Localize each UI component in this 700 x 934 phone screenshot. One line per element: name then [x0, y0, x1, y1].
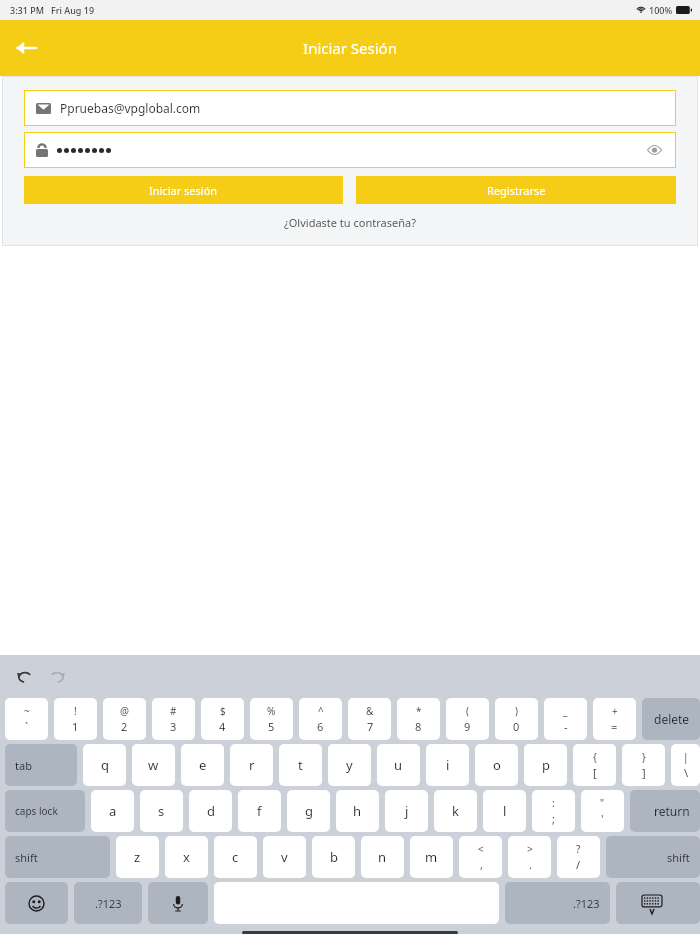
staticText: u	[394, 756, 403, 774]
staticText: 6	[317, 719, 324, 734]
button[interactable]: }	[622, 744, 665, 786]
button[interactable]: #	[152, 698, 195, 740]
button[interactable]: Undo	[10, 662, 40, 692]
button[interactable]: p	[524, 744, 567, 786]
button[interactable]: h	[336, 790, 379, 832]
button[interactable]: .?123	[74, 882, 142, 924]
button[interactable]: ¿Olvidaste tu contraseña?	[278, 213, 422, 232]
button[interactable]: %	[250, 698, 293, 740]
button[interactable]: {	[573, 744, 616, 786]
button[interactable]: delete	[642, 698, 700, 740]
staticText: ;	[552, 811, 555, 826]
button[interactable]: z	[116, 836, 159, 878]
button[interactable]: Redo	[42, 662, 72, 692]
staticText: 2	[121, 719, 128, 734]
staticText: shift	[15, 850, 38, 865]
button[interactable]: caps lock	[5, 790, 85, 832]
staticText: 0	[513, 719, 520, 734]
button[interactable]: tab	[5, 744, 77, 786]
staticText: )	[515, 704, 518, 718]
button[interactable]: l	[483, 790, 526, 832]
staticText: j	[405, 802, 409, 820]
button[interactable]: ~	[5, 698, 48, 740]
staticText: {	[593, 750, 597, 764]
button[interactable]: ^	[299, 698, 342, 740]
button[interactable]: a	[91, 790, 134, 832]
button[interactable]: :	[532, 790, 575, 832]
staticText: |	[683, 750, 689, 764]
button[interactable]: <	[459, 836, 502, 878]
button[interactable]: b	[312, 836, 355, 878]
button[interactable]: o	[475, 744, 518, 786]
button[interactable]: d	[189, 790, 232, 832]
button[interactable]: Show password	[24, 132, 676, 168]
staticText: n	[378, 848, 387, 866]
staticText: d	[207, 802, 215, 820]
staticText: m	[425, 848, 438, 866]
staticText: .	[529, 857, 532, 872]
button[interactable]: Show password	[640, 136, 668, 164]
button[interactable]: ?	[557, 836, 600, 878]
staticText: ?	[576, 842, 581, 856]
staticText: x	[183, 848, 190, 866]
button[interactable]: (	[446, 698, 489, 740]
staticText: o	[493, 756, 501, 774]
staticText: h	[353, 802, 362, 820]
staticText: b	[330, 848, 338, 866]
button[interactable]: Back	[4, 26, 48, 70]
button[interactable]: *	[397, 698, 440, 740]
button[interactable]: y	[328, 744, 371, 786]
button[interactable]: s	[140, 790, 183, 832]
staticText: *	[416, 704, 422, 718]
staticText: Iniciar sesión	[149, 183, 218, 198]
button[interactable]: |	[671, 744, 700, 786]
button[interactable]: "	[581, 790, 624, 832]
button[interactable]: @	[103, 698, 146, 740]
staticText: $	[220, 704, 226, 718]
button[interactable]: kbd	[616, 882, 700, 924]
button[interactable]: g	[287, 790, 330, 832]
button[interactable]: c	[214, 836, 257, 878]
button[interactable]: emoji	[5, 882, 68, 924]
button[interactable]: mic	[148, 882, 208, 924]
button[interactable]: &	[348, 698, 391, 740]
button[interactable]: i	[426, 744, 469, 786]
button[interactable]: Ppruebas@vpglobal.com	[24, 90, 676, 126]
staticText: :	[552, 796, 555, 810]
button[interactable]: v	[263, 836, 306, 878]
button[interactable]: Registrarse	[356, 176, 676, 204]
button[interactable]: .?123	[505, 882, 610, 924]
staticText: p	[542, 756, 550, 774]
button[interactable]: k	[434, 790, 477, 832]
button[interactable]: f	[238, 790, 281, 832]
button[interactable]: t	[279, 744, 322, 786]
button[interactable]: Iniciar sesión	[24, 176, 343, 204]
button[interactable]: )	[495, 698, 538, 740]
button[interactable]: shift	[606, 836, 700, 878]
staticText: <	[478, 842, 484, 856]
button[interactable]: shift	[5, 836, 110, 878]
button[interactable]: n	[361, 836, 404, 878]
button[interactable]: !	[54, 698, 97, 740]
button[interactable]: +	[593, 698, 636, 740]
button[interactable]: u	[377, 744, 420, 786]
button[interactable]: j	[385, 790, 428, 832]
button[interactable]: w	[132, 744, 175, 786]
staticText: 7	[367, 719, 374, 734]
button[interactable]: q	[83, 744, 126, 786]
staticText: -	[564, 719, 568, 734]
button[interactable]: _	[544, 698, 587, 740]
button[interactable]: return	[630, 790, 700, 832]
button[interactable]: m	[410, 836, 453, 878]
staticText: k	[452, 802, 459, 820]
button[interactable]: e	[181, 744, 224, 786]
staticText: /	[576, 857, 581, 872]
button[interactable]: r	[230, 744, 273, 786]
staticText: "	[600, 796, 605, 810]
button[interactable]: $	[201, 698, 244, 740]
staticText: z	[134, 848, 141, 866]
button[interactable]: >	[508, 836, 551, 878]
button[interactable]: x	[165, 836, 208, 878]
staticText: i	[446, 756, 450, 774]
